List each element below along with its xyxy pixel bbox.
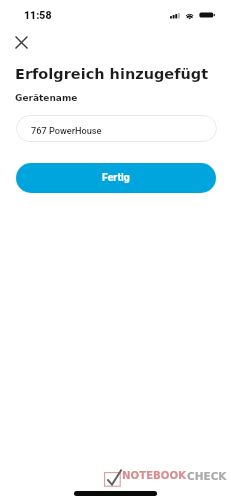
button[interactable]: Fertig bbox=[16, 163, 216, 193]
button[interactable]: 767 PowerHouse bbox=[16, 115, 217, 142]
staticText: Fertig bbox=[102, 171, 130, 183]
button[interactable]: Close bbox=[5, 26, 37, 58]
staticText: NOTEBOOK bbox=[122, 470, 187, 482]
staticText: CHECK bbox=[187, 470, 227, 482]
staticText: 767 PowerHouse bbox=[31, 125, 102, 136]
staticText: Erfolgreich hinzugefügt bbox=[15, 66, 209, 83]
staticText: Gerätename bbox=[15, 93, 78, 103]
staticText: 11:58 bbox=[24, 9, 52, 21]
